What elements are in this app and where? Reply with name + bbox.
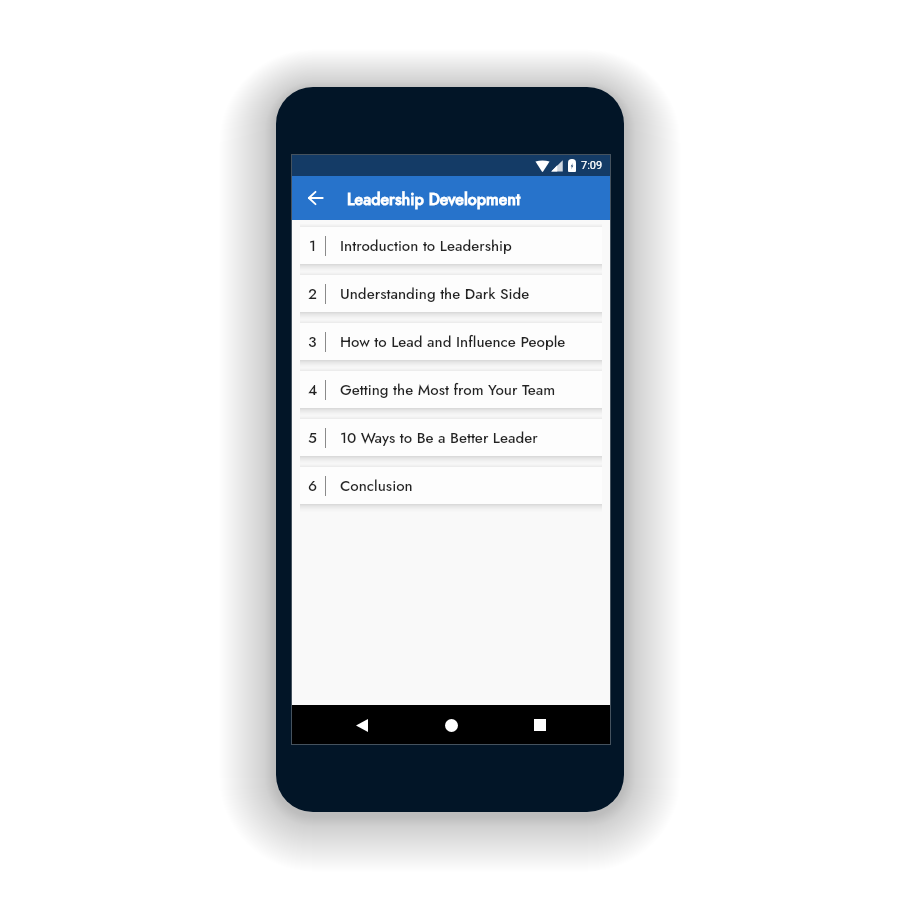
button[interactable]: Recents [525, 710, 555, 740]
staticText: Understanding the Dark Side [340, 283, 530, 305]
button[interactable]: Back [300, 183, 330, 213]
button[interactable]: 4 [300, 371, 602, 408]
staticText: 6 [308, 475, 318, 497]
staticText: Getting the Most from Your Team [340, 379, 556, 401]
staticText: How to Lead and Influence People [340, 331, 566, 353]
staticText: 3 [308, 331, 317, 353]
staticText: 2 [308, 283, 317, 305]
staticText: 7:09 [581, 159, 603, 172]
staticText: 1 [309, 235, 317, 257]
button[interactable]: Back [347, 710, 377, 740]
staticText: 10 Ways to Be a Better Leader [340, 427, 538, 449]
staticText: 5 [308, 427, 317, 449]
button[interactable]: Home [436, 710, 466, 740]
staticText: Introduction to Leadership [340, 235, 512, 257]
button[interactable]: 1 [300, 227, 602, 264]
staticText: Leadership Development [347, 188, 521, 211]
staticText: 4 [308, 379, 318, 401]
button[interactable]: 5 [300, 419, 602, 456]
button[interactable]: 2 [300, 275, 602, 312]
button[interactable]: 3 [300, 323, 602, 360]
button[interactable]: 6 [300, 467, 602, 504]
staticText: Conclusion [340, 475, 413, 497]
